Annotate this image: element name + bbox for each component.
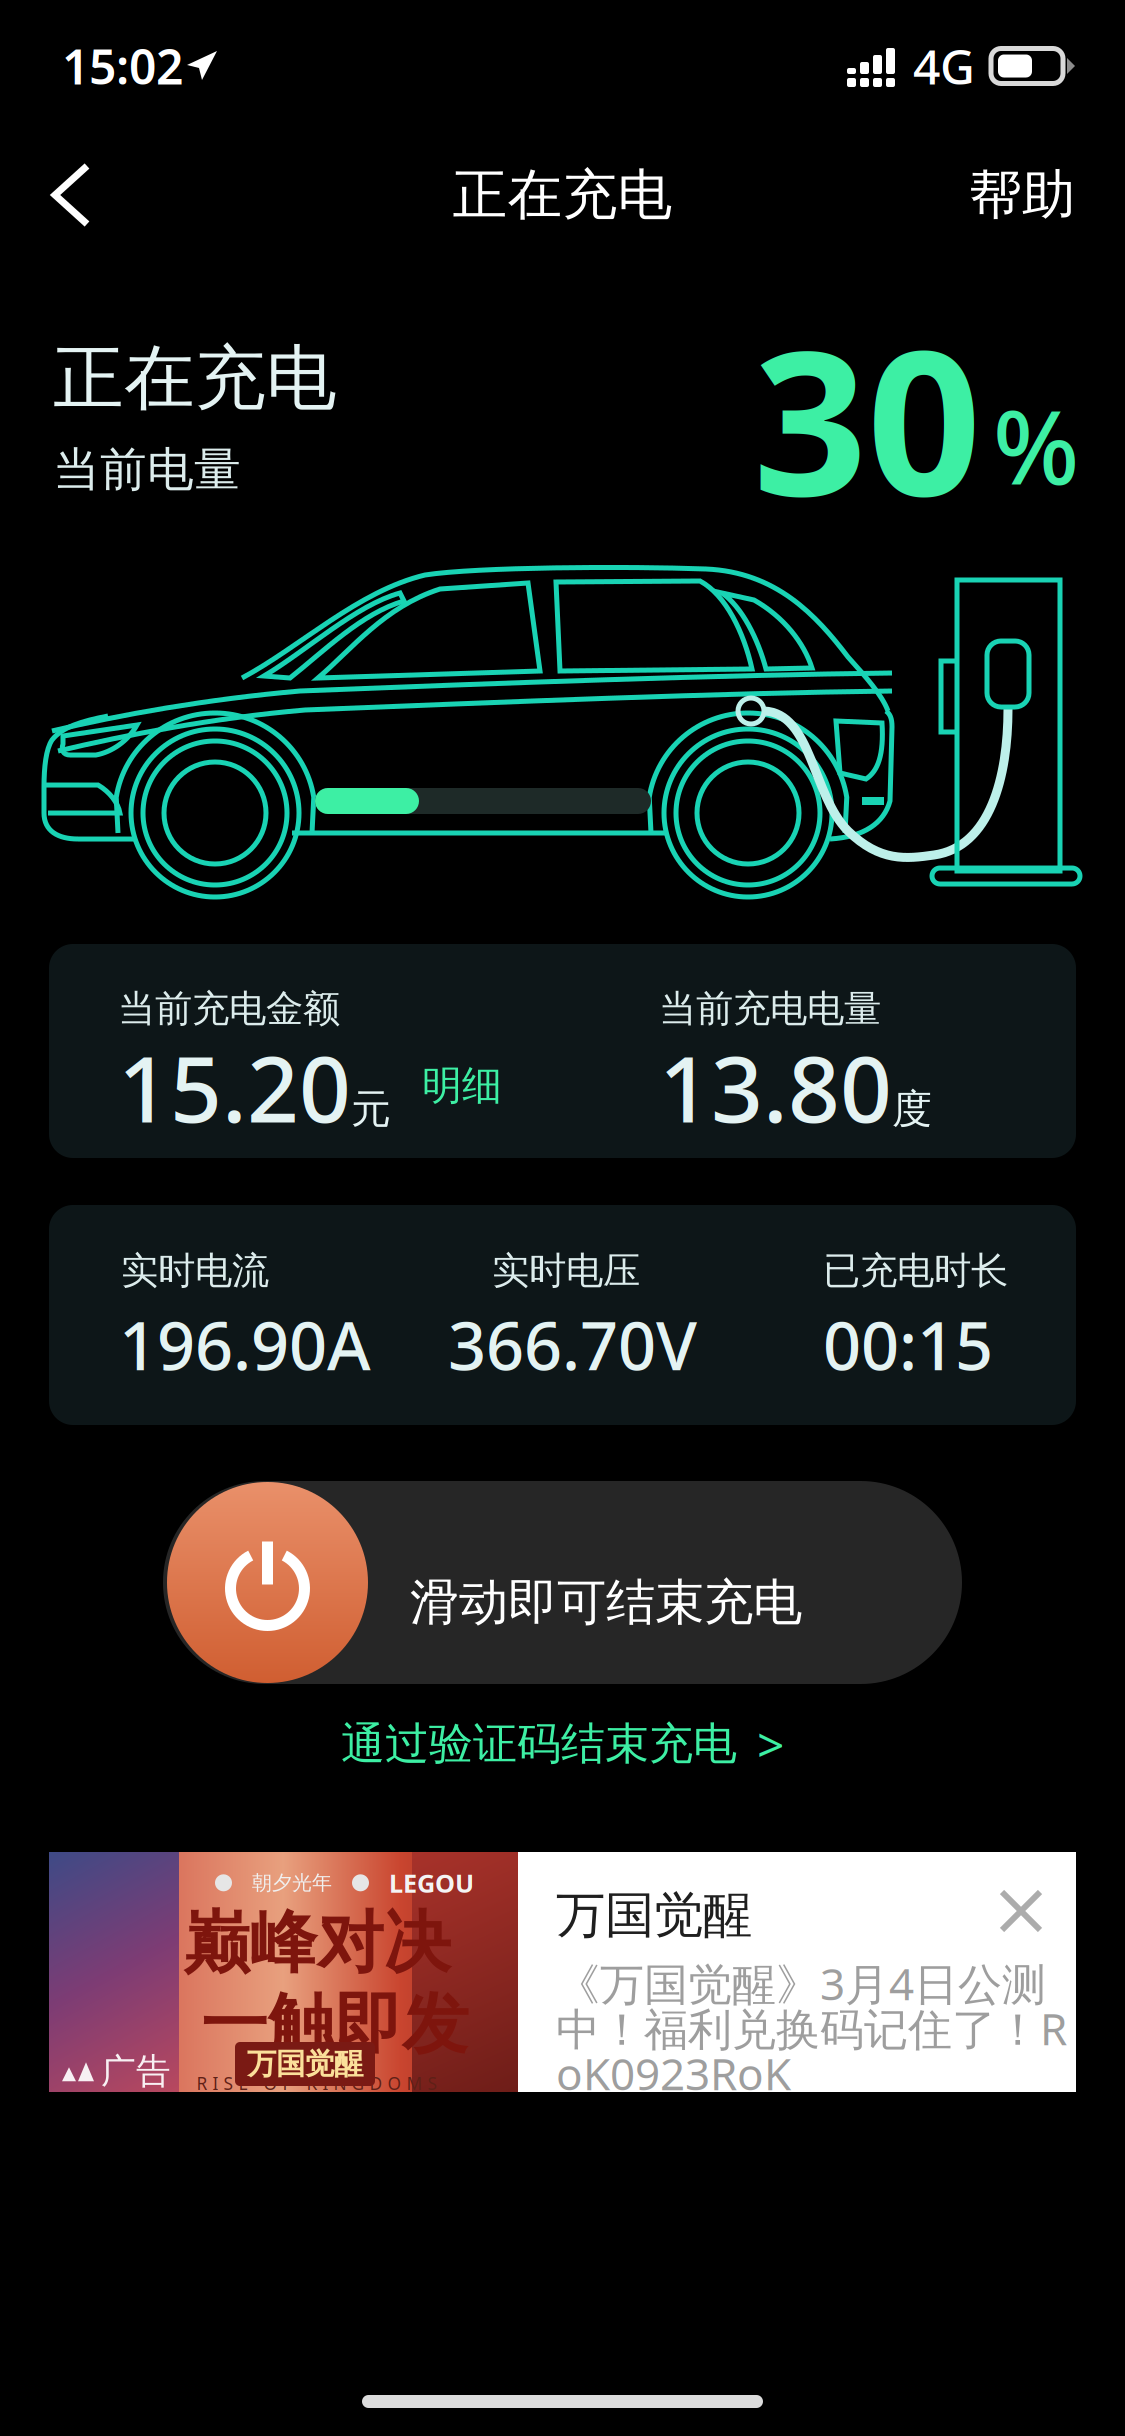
staticText: LEGOU bbox=[389, 1866, 474, 1900]
staticText: 实时电流 bbox=[121, 1248, 269, 1294]
staticText: 正在充电 bbox=[452, 161, 672, 228]
button[interactable]: 通过验证码结束充电 bbox=[0, 1696, 1125, 1792]
staticText: 4G bbox=[913, 34, 975, 98]
button[interactable]: 帮助 bbox=[909, 140, 1095, 250]
staticText: 朝夕光年 bbox=[252, 1870, 332, 1895]
staticText: 196.90A bbox=[119, 1300, 371, 1388]
staticText: 15.20 bbox=[118, 1027, 351, 1147]
staticText: 广告 bbox=[101, 2050, 171, 2093]
staticText: 正在充电 bbox=[53, 335, 337, 422]
staticText: 明细 bbox=[422, 1061, 502, 1110]
staticText: 13.80 bbox=[659, 1027, 892, 1147]
staticText: % bbox=[993, 378, 1079, 513]
staticText: 当前充电电量 bbox=[659, 986, 881, 1032]
button[interactable]: 滑动即可结束充电 bbox=[163, 1481, 962, 1684]
staticText: 《万国觉醒》3月4日公测 bbox=[556, 1954, 1046, 2012]
staticText: 万国觉醒 bbox=[556, 1885, 752, 1946]
staticText: 一触即发 bbox=[201, 1984, 469, 2066]
staticText: 实时电压 bbox=[492, 1248, 640, 1294]
staticText: 已充电时长 bbox=[823, 1248, 1008, 1294]
staticText: 巅峰对决 bbox=[183, 1902, 451, 1984]
button[interactable]: 朝夕光年 bbox=[49, 1852, 1076, 2092]
staticText: 滑动即可结束充电 bbox=[410, 1572, 802, 1633]
staticText: 当前充电金额 bbox=[118, 986, 340, 1032]
staticText: 30 bbox=[753, 285, 981, 551]
staticText: 15:02 bbox=[62, 34, 183, 98]
staticText: 00:15 bbox=[823, 1300, 993, 1388]
staticText: 帮助 bbox=[969, 162, 1075, 228]
staticText: 366.70V bbox=[448, 1300, 697, 1388]
staticText: 元 bbox=[351, 1084, 391, 1134]
staticText: 万国觉醒 bbox=[247, 2046, 363, 2082]
staticText: oK0923RoK bbox=[556, 2044, 791, 2102]
staticText: R I S E O F K I N G D O M S bbox=[196, 2072, 437, 2095]
staticText: 度 bbox=[892, 1084, 932, 1134]
button[interactable]: Back bbox=[30, 137, 152, 253]
staticText: 中！福利兑换码记住了！R bbox=[556, 1999, 1067, 2057]
staticText: 当前电量 bbox=[53, 441, 241, 498]
button[interactable]: 明细 bbox=[408, 1047, 516, 1124]
staticText: > bbox=[757, 1712, 784, 1776]
staticText: 通过验证码结束充电 bbox=[341, 1717, 737, 1771]
